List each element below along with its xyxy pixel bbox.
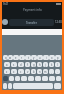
staticText: c: [20, 70, 22, 74]
staticText: r: [21, 56, 23, 60]
staticText: o: [51, 56, 53, 60]
button[interactable]: r: [19, 55, 25, 60]
staticText: z: [6, 70, 8, 74]
button[interactable]: t: [25, 55, 31, 60]
staticText: 12:30: [55, 20, 62, 24]
button[interactable]: ,: [49, 69, 54, 74]
button[interactable]: Backspace: [56, 76, 61, 81]
button[interactable]: v: [25, 69, 30, 74]
staticText: w: [9, 56, 12, 60]
button[interactable]: z: [4, 69, 10, 74]
staticText: s: [13, 63, 15, 67]
button[interactable]: a: [4, 62, 10, 67]
button[interactable]: g: [31, 62, 36, 67]
button[interactable]: i: [43, 55, 49, 60]
button[interactable]: [15, 76, 20, 81]
staticText: j: [45, 63, 46, 67]
staticText: 9:41: [3, 2, 9, 6]
staticText: p: [57, 56, 59, 60]
staticText: l: [57, 63, 58, 67]
button[interactable]: u: [37, 55, 43, 60]
button[interactable]: p: [55, 55, 61, 60]
button[interactable]: n: [37, 69, 42, 74]
button[interactable]: b: [31, 69, 36, 74]
button[interactable]: m: [43, 69, 48, 74]
staticText: g: [33, 63, 35, 67]
staticText: m: [44, 70, 47, 74]
button[interactable]: f: [25, 62, 30, 67]
button[interactable]: x: [11, 69, 17, 74]
button[interactable]: k: [49, 62, 54, 67]
staticText: y: [33, 56, 35, 60]
button[interactable]: Symbols: [3, 83, 7, 89]
button[interactable]: s: [11, 62, 17, 67]
staticText: u: [39, 56, 41, 60]
staticText: k: [51, 63, 53, 67]
button[interactable]: h: [37, 62, 42, 67]
staticText: t: [28, 56, 29, 60]
button[interactable]: [9, 76, 14, 81]
button[interactable]: c: [18, 69, 24, 74]
button[interactable]: Enter: [54, 83, 61, 89]
button[interactable]: l: [55, 62, 60, 67]
button[interactable]: Space: [13, 83, 53, 89]
button[interactable]: w: [8, 55, 13, 60]
button[interactable]: y: [31, 55, 37, 60]
staticText: f: [27, 63, 28, 67]
staticText: i: [46, 56, 47, 60]
button[interactable]: .: [55, 69, 60, 74]
button[interactable]: [35, 76, 41, 81]
staticText: n: [39, 70, 41, 74]
staticText: .: [57, 70, 58, 74]
staticText: x: [13, 70, 15, 74]
staticText: q: [5, 56, 7, 60]
staticText: ,: [51, 70, 52, 74]
staticText: d: [20, 63, 22, 67]
button[interactable]: [42, 76, 48, 81]
staticText: Transfer: [26, 21, 37, 25]
button[interactable]: Emoji: [8, 83, 12, 89]
staticText: h: [39, 63, 41, 67]
staticText: e: [15, 56, 17, 60]
button[interactable]: [28, 76, 34, 81]
staticText: Payment info: [23, 8, 42, 12]
button[interactable]: o: [49, 55, 55, 60]
button[interactable]: q: [3, 55, 8, 60]
staticText: v: [27, 70, 29, 74]
staticText: a: [6, 63, 8, 67]
button[interactable]: [49, 76, 55, 81]
button[interactable]: j: [43, 62, 48, 67]
button[interactable]: d: [18, 62, 24, 67]
button[interactable]: Shift: [3, 76, 8, 81]
button[interactable]: [21, 76, 27, 81]
button[interactable]: e: [13, 55, 19, 60]
button[interactable]: Transfer: [2, 18, 62, 26]
staticText: b: [33, 70, 35, 74]
